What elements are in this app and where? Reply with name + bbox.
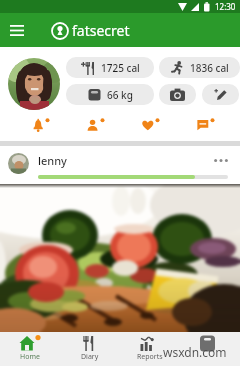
button[interactable] xyxy=(180,332,240,366)
button[interactable] xyxy=(30,117,54,137)
button[interactable] xyxy=(85,117,109,137)
staticText: Home xyxy=(20,352,40,362)
staticText: 12:30 xyxy=(215,1,236,12)
button[interactable]: 66 kg xyxy=(66,84,154,105)
button[interactable] xyxy=(0,13,34,47)
staticText: 1836 cal xyxy=(190,61,229,75)
staticText: 66 kg xyxy=(107,88,133,102)
button[interactable]: 1836 cal xyxy=(159,57,240,78)
button[interactable]: Reports xyxy=(120,332,180,366)
staticText: fatsecret xyxy=(72,21,130,40)
button[interactable] xyxy=(140,117,164,137)
button[interactable] xyxy=(159,84,196,105)
staticText: wsxdn.com xyxy=(163,344,227,360)
button[interactable] xyxy=(202,84,239,105)
button[interactable]: lenny xyxy=(0,146,240,184)
button[interactable]: 1725 cal xyxy=(66,57,154,78)
button[interactable] xyxy=(195,117,219,137)
staticText: lenny xyxy=(38,153,67,168)
button[interactable]: Home xyxy=(0,332,60,366)
staticText: Diary xyxy=(81,352,99,362)
button[interactable]: fatsecret xyxy=(52,21,130,40)
button[interactable]: Diary xyxy=(60,332,120,366)
staticText: 1725 cal xyxy=(101,61,140,75)
staticText: Reports xyxy=(137,352,163,362)
